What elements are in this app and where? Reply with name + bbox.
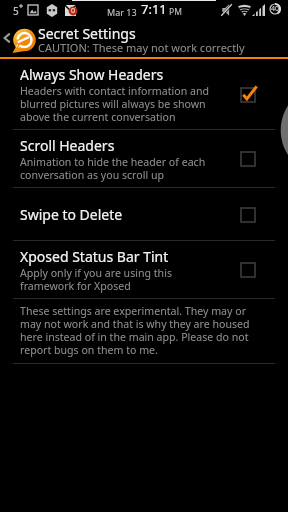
- staticText: PM: [169, 6, 182, 18]
- button[interactable]: Toggle setting: [241, 88, 255, 102]
- button[interactable]: Toggle setting: [241, 152, 255, 166]
- button[interactable]: Toggle setting: [241, 208, 255, 222]
- button[interactable]: Toggle setting: [241, 263, 255, 277]
- staticText: 7:11: [141, 0, 167, 18]
- staticText: 5: [13, 4, 19, 18]
- staticText: Xposed Status Bar Tint: [20, 247, 169, 266]
- button[interactable]: Scroll Headers: [0, 130, 288, 187]
- staticText: Apply only if you are using this framewo…: [20, 266, 172, 293]
- button[interactable]: Xposed Status Bar Tint: [0, 241, 288, 298]
- staticText: CAUTION: These may not work correctly: [38, 40, 245, 55]
- staticText: 0: [71, 6, 76, 16]
- staticText: Always Show Headers: [20, 65, 164, 84]
- button[interactable]: Always Show Headers: [0, 59, 288, 129]
- staticText: 40: [271, 4, 280, 14]
- staticText: Scroll Headers: [20, 136, 115, 155]
- button[interactable]: Swipe to Delete: [0, 188, 288, 240]
- staticText: Mar 13: [107, 6, 137, 18]
- staticText: Animation to hide the header of each con…: [20, 155, 206, 182]
- other: Back: [2, 33, 12, 43]
- staticText: Secret Settings: [38, 24, 136, 43]
- staticText: Swipe to Delete: [20, 205, 123, 224]
- button[interactable]: Back: [0, 20, 288, 57]
- staticText: Headers with contact information and blu…: [20, 84, 209, 124]
- staticText: These settings are experimental. They ma…: [20, 304, 250, 357]
